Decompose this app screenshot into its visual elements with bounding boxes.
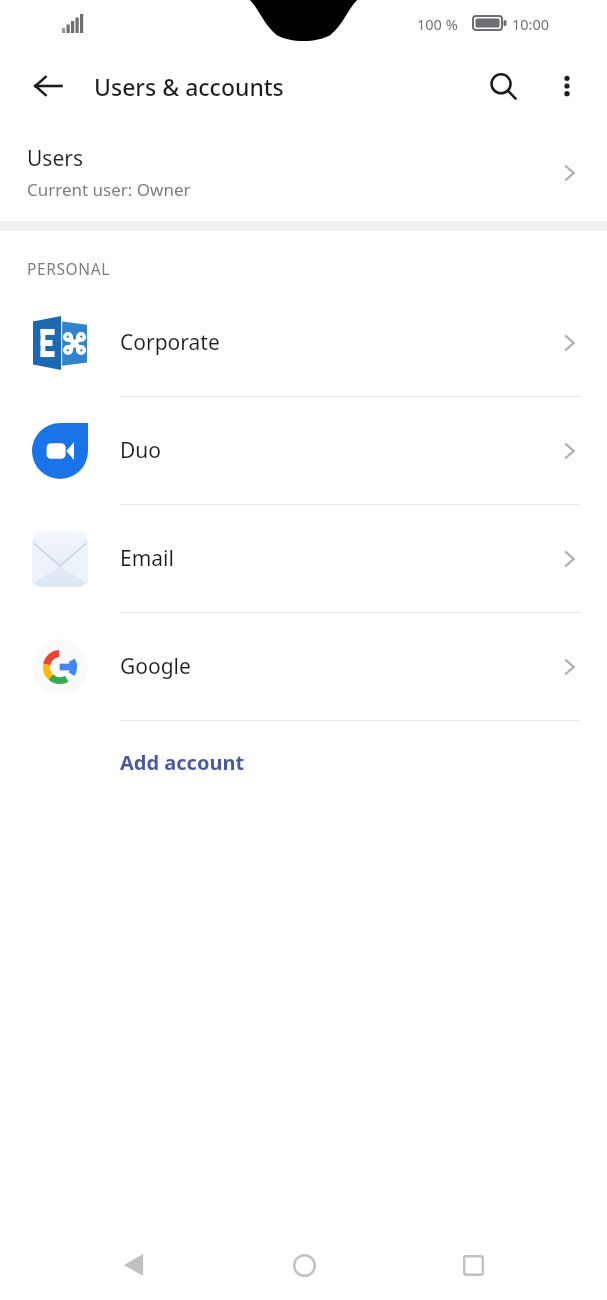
button[interactable]: Home [268, 1230, 340, 1300]
staticText: Current user: Owner [27, 178, 191, 201]
staticText: Corporate [120, 328, 556, 357]
button[interactable]: Back [98, 1230, 170, 1300]
button[interactable]: Email [0, 505, 607, 612]
button[interactable]: Add account [0, 721, 607, 804]
button[interactable]: Google [0, 613, 607, 720]
staticText: 10:00 [512, 14, 550, 34]
staticText: Email [120, 544, 556, 573]
button[interactable]: Recents [437, 1230, 509, 1300]
staticText: PERSONAL [27, 258, 110, 279]
button[interactable]: More options [541, 60, 593, 112]
staticText: Add account [120, 749, 245, 776]
staticText: Duo [120, 436, 556, 465]
staticText: Users [27, 144, 83, 173]
staticText: Google [120, 652, 556, 681]
staticText: 100 % [417, 14, 458, 34]
button[interactable]: Search [477, 60, 529, 112]
button[interactable]: Users [0, 124, 607, 221]
staticText: Users & accounts [94, 71, 284, 102]
button[interactable]: Duo [0, 397, 607, 504]
button[interactable]: Corporate [0, 289, 607, 396]
button[interactable]: Back [20, 58, 76, 114]
